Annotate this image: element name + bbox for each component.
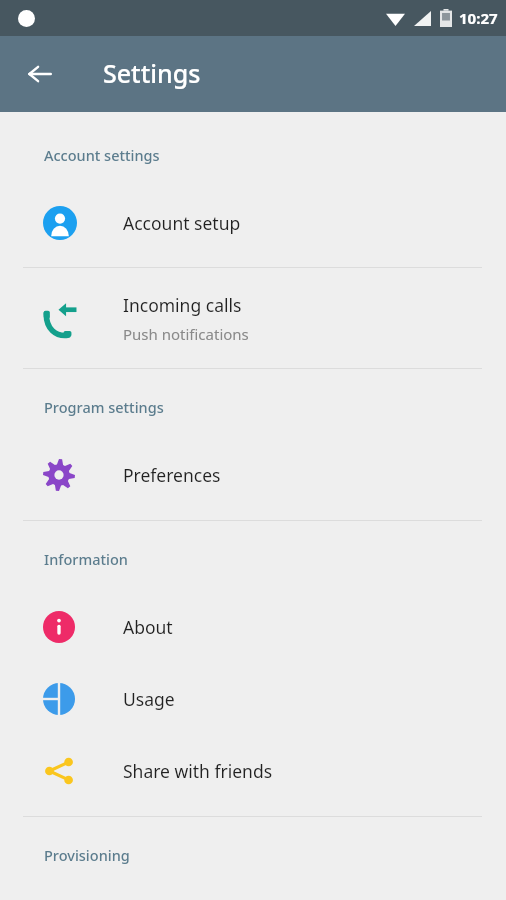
staticText: Incoming calls bbox=[123, 293, 242, 317]
staticText: About bbox=[123, 615, 173, 639]
staticText: Program settings bbox=[44, 397, 164, 417]
staticText: Account setup bbox=[123, 211, 241, 235]
staticText: Provisioning bbox=[44, 845, 130, 865]
button[interactable]: Back bbox=[16, 50, 64, 98]
button[interactable]: Incoming calls bbox=[0, 268, 506, 368]
button[interactable]: Share with friends bbox=[0, 735, 506, 807]
staticText: 10:27 bbox=[459, 8, 498, 28]
button[interactable]: Account setup bbox=[0, 187, 506, 259]
button[interactable]: Usage bbox=[0, 663, 506, 735]
staticText: Account settings bbox=[44, 145, 160, 165]
staticText: Usage bbox=[123, 687, 175, 711]
staticText: Settings bbox=[103, 56, 201, 90]
staticText: Share with friends bbox=[123, 759, 273, 783]
staticText: Information bbox=[44, 549, 128, 569]
staticText: Push notifications bbox=[123, 324, 249, 344]
staticText: Preferences bbox=[123, 463, 221, 487]
button[interactable]: Preferences bbox=[0, 439, 506, 511]
button[interactable]: About bbox=[0, 591, 506, 663]
